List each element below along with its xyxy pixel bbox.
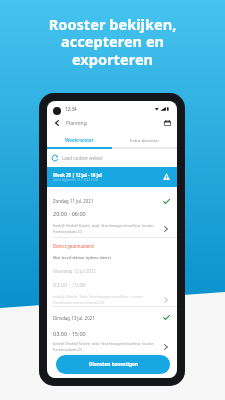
staticText: Dinsdag 13 jul. 2021 <box>53 315 95 321</box>
staticText: 03:00 - 15:00 <box>53 281 86 288</box>
staticText: Diensten bevestigen <box>89 361 138 368</box>
staticText: Laatst bijgewerkt: 10-7-2021 21:04 <box>53 178 98 182</box>
staticText: Dienst geannuleerd <box>53 243 94 249</box>
staticText: Rooster bekijken, accepteren en exporter… <box>0 14 225 69</box>
button[interactable]: Details <box>160 223 172 235</box>
staticText: Niet beschikbaar tijdens dienst <box>53 255 111 260</box>
button[interactable]: Weekrooster <box>47 133 112 147</box>
staticText: Extra diensten <box>130 137 159 143</box>
button[interactable]: Details <box>160 294 172 306</box>
staticText: Zondag 11 jul. 2021 <box>53 198 94 204</box>
staticText: 20:00 - 06:00 <box>53 210 86 217</box>
staticText: Weekrooster <box>65 137 94 143</box>
button[interactable]: Extra diensten <box>112 133 177 147</box>
button[interactable] <box>47 167 177 187</box>
staticText: bedrijf: Bedrijf Kracht, taak: Vrachtwag… <box>53 223 163 234</box>
staticText: Laad oudere weken <box>62 155 103 161</box>
staticText: bedrijf: Kracht, Taak: Vrachtwagenchauff… <box>53 294 163 305</box>
staticText: Maandag 12 jul 2021 <box>53 268 96 274</box>
staticText: 12:34 <box>65 106 77 112</box>
staticText: Week 28 | 12 jul - 18 jul <box>53 172 102 178</box>
button[interactable]: Calendar <box>159 115 175 131</box>
button[interactable]: Details <box>160 341 172 353</box>
button[interactable]: Laad oudere weken <box>47 150 177 166</box>
button[interactable]: Diensten bevestigen <box>56 355 170 374</box>
staticText: bedrijf: Bedrijf Kracht, taak: Vrachtwag… <box>53 341 163 352</box>
button[interactable]: Back <box>49 115 65 131</box>
staticText: 03:00 - 15:00 <box>53 330 86 337</box>
staticText: Planning <box>66 120 87 127</box>
